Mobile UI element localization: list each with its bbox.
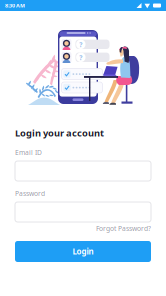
staticText: Login <box>72 246 93 257</box>
staticText: ? <box>79 40 82 49</box>
staticText: Login your account <box>15 127 104 139</box>
button[interactable]: Forgot Password? <box>80 224 151 233</box>
staticText: Password <box>15 189 45 198</box>
staticText: Forgot Password? <box>96 224 151 233</box>
staticText: ? <box>79 53 82 62</box>
staticText: Email ID <box>15 148 42 157</box>
button[interactable]: Login <box>15 241 151 262</box>
staticText: 8:30 AM <box>5 2 25 9</box>
